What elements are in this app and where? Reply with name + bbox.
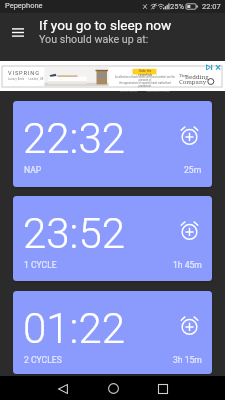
staticText: VISPRING [8,70,40,77]
staticText: 01:22 [23,304,126,353]
staticText: 1 CYCLE [24,260,57,270]
button[interactable]: Advertisement [0,61,225,91]
staticText: 25m [184,165,202,175]
button[interactable]: Recent apps [148,377,177,400]
button[interactable]: Set alarm [181,316,198,336]
staticText: If you go to sleep now [39,17,172,33]
staticText: A collection of beds where craft and com… [113,76,177,82]
button[interactable]: Open navigation menu [5,20,30,45]
staticText: You should wake up at: [39,33,149,46]
staticText: 22:32 [23,114,126,163]
staticText: 3h 15m [173,355,202,365]
staticText: the appreciation of expertly hand crafte… [113,82,177,88]
button[interactable]: Back [48,377,77,400]
staticText: 22:07 [202,2,221,11]
button[interactable]: Set alarm [181,126,198,146]
staticText: Pepephone [5,1,43,10]
staticText: 2 CYCLES [24,355,62,365]
staticText: Company [179,78,207,86]
staticText: The [179,73,187,79]
staticText: 1h 45m [173,260,202,270]
staticText: Handmade in London [146,90,170,93]
button[interactable]: Home [99,377,128,400]
staticText: Free UK delivery [120,90,138,93]
button[interactable]: 23:52 [13,196,212,281]
staticText: Luxury Beds · London, UK [8,78,44,81]
button[interactable]: 22:32 [13,101,212,187]
staticText: Bedding [185,73,209,81]
staticText: Order the essentials [134,69,156,77]
button[interactable]: 01:22 [13,291,212,374]
staticText: 25% [170,2,184,11]
staticText: 23:52 [23,209,126,258]
staticText: NAP [24,165,42,175]
button[interactable]: Set alarm [181,221,198,241]
